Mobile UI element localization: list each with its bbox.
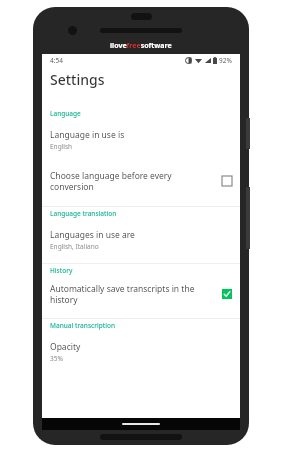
staticText: Languages in use are bbox=[50, 229, 135, 241]
staticText: Language in use is bbox=[50, 129, 125, 141]
staticText: ilovefreesoftware bbox=[110, 41, 172, 51]
staticText: English, Italiano bbox=[50, 242, 99, 251]
staticText: Manual transcription bbox=[50, 321, 116, 330]
button[interactable]: Languages in use are bbox=[42, 220, 240, 251]
staticText: 92% bbox=[219, 56, 232, 65]
button[interactable]: Opacity bbox=[42, 332, 240, 363]
staticText: Language translation bbox=[50, 209, 117, 218]
other: Unchecked checkbox bbox=[222, 176, 232, 186]
button[interactable]: Language in use is bbox=[42, 120, 240, 151]
staticText: Settings bbox=[50, 70, 105, 89]
button[interactable]: Automatically save transcripts in the hi… bbox=[42, 277, 240, 309]
staticText: English bbox=[50, 142, 73, 151]
staticText: Opacity bbox=[50, 341, 81, 353]
staticText: Choose language before every conversion bbox=[50, 170, 216, 192]
staticText: Automatically save transcripts in the hi… bbox=[50, 283, 216, 305]
staticText: 4:54 bbox=[50, 56, 63, 65]
button[interactable]: Choose language before every conversion bbox=[42, 164, 240, 196]
staticText: 35% bbox=[50, 354, 63, 363]
staticText: Language bbox=[50, 109, 81, 118]
other: Checked checkbox bbox=[222, 289, 232, 299]
staticText: History bbox=[50, 266, 73, 275]
